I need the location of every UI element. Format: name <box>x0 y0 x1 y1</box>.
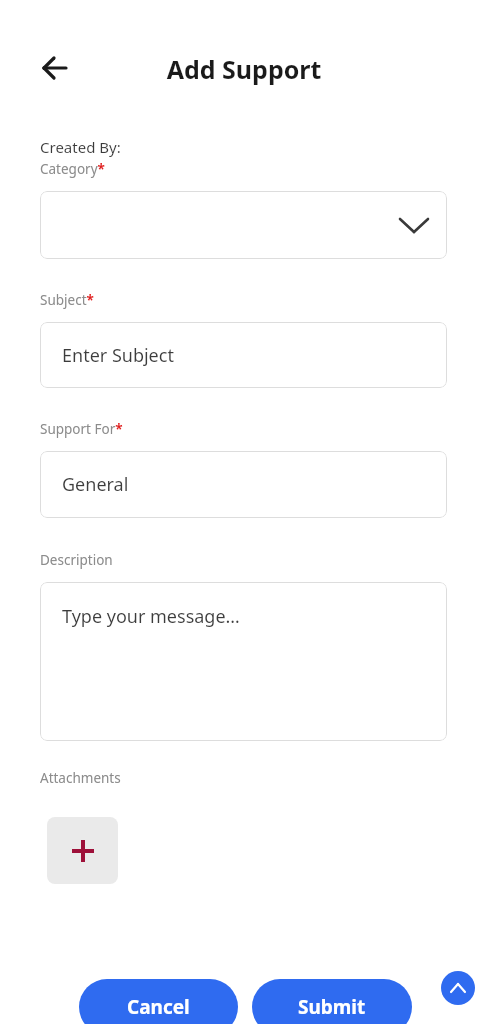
staticText: Support For* <box>40 420 123 438</box>
button[interactable]: Submit <box>252 979 412 1024</box>
button[interactable]: Select Category <box>40 191 447 259</box>
staticText: Submit <box>298 994 366 1020</box>
button[interactable]: General <box>40 451 447 518</box>
button[interactable]: Scroll to top <box>441 971 475 1005</box>
button[interactable]: Enter Subject <box>40 322 447 388</box>
button[interactable]: Add attachment <box>47 817 118 884</box>
staticText: Add Support <box>0 52 488 86</box>
staticText: Enter Subject <box>62 343 174 368</box>
staticText: Type your message… <box>62 604 240 629</box>
staticText: Subject* <box>40 291 94 309</box>
staticText: Cancel <box>127 994 190 1020</box>
button[interactable]: Back <box>36 50 72 86</box>
staticText: General <box>62 472 129 497</box>
staticText: Created By: <box>40 137 121 157</box>
staticText: Description <box>40 551 113 569</box>
staticText: Attachments <box>40 769 121 787</box>
button[interactable]: Cancel <box>79 979 238 1024</box>
button[interactable]: Type your message… <box>40 582 447 741</box>
staticText: Category* <box>40 160 105 178</box>
